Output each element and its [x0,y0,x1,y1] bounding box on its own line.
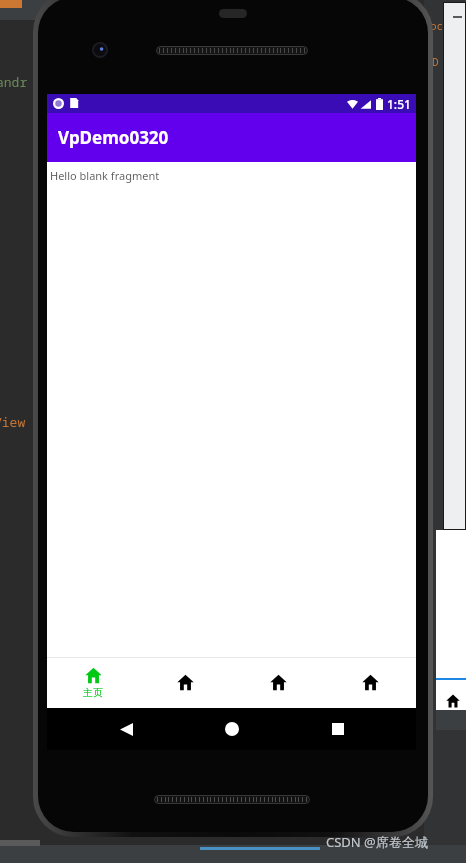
staticText: Hello blank fragment [50,168,160,183]
staticText: VpDemo0320 [58,126,169,149]
button[interactable]: Back [120,723,133,736]
staticText: oc [430,18,444,33]
button[interactable]: Home tab [324,657,416,708]
staticText: andr [0,73,28,91]
staticText: D [432,54,439,69]
button[interactable]: Home [225,722,239,736]
staticText: 主页 [83,686,103,699]
staticText: View [0,413,26,431]
button[interactable]: Home tab [139,657,231,708]
staticText: CSDN @席卷全城 [326,833,428,851]
staticText: 1:51 [387,96,411,112]
button[interactable]: Home tab [232,657,324,708]
button[interactable]: 主页 [47,657,139,708]
